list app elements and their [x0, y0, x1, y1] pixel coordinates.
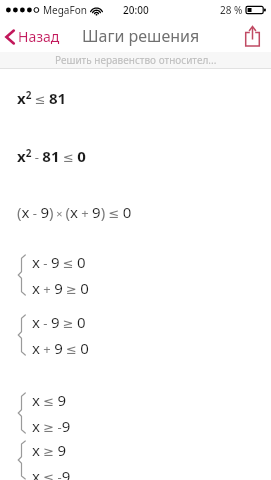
staticText: x - 9 ≥ 0 — [32, 312, 86, 332]
staticText: Шаги решения — [82, 25, 200, 47]
staticText: MegaFon — [43, 3, 87, 17]
staticText: x ≥ -9 — [32, 416, 71, 436]
staticText: Решить неравенство относител... — [55, 53, 217, 67]
staticText: (x - 9) × (x + 9) ≤ 0 — [17, 202, 132, 222]
staticText: x + 9 ≤ 0 — [32, 338, 89, 358]
staticText: x2 - 81 ≤ 0 — [17, 146, 86, 166]
staticText: 20:00 — [123, 3, 149, 17]
staticText: 28 % — [220, 3, 243, 17]
button[interactable]: Назад — [0, 24, 66, 49]
staticText: x ≤ 9 — [32, 390, 67, 410]
staticText: x2 ≤ 81 — [17, 88, 67, 108]
staticText: Назад — [18, 27, 60, 46]
staticText: x ≥ 9 — [32, 440, 67, 460]
staticText: x - 9 ≤ 0 — [32, 252, 86, 272]
staticText: x ≤ -9 — [32, 466, 71, 480]
button[interactable]: Share — [234, 21, 271, 51]
staticText: x + 9 ≥ 0 — [32, 278, 89, 298]
